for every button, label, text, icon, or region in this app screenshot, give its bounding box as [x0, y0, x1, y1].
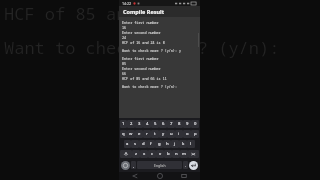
button[interactable]: z — [132, 150, 140, 158]
button[interactable]: o — [183, 130, 191, 138]
staticText: x — [143, 151, 146, 157]
button[interactable]: Shift — [120, 150, 132, 158]
staticText: h — [166, 141, 169, 147]
staticText: HCF of 16 and 24 is 8 — [122, 40, 165, 45]
staticText: 14:22 — [122, 1, 131, 6]
staticText: Enter first number — [122, 20, 159, 25]
staticText: a — [126, 141, 129, 147]
button[interactable]: p — [191, 130, 199, 138]
button[interactable]: q — [120, 130, 127, 138]
staticText: 66 — [122, 71, 127, 76]
button[interactable]: h — [163, 140, 171, 148]
button[interactable]: r — [143, 130, 151, 138]
button[interactable]: v — [156, 150, 164, 158]
staticText: m — [182, 151, 186, 157]
staticText: 4 — [146, 121, 149, 127]
button[interactable]: Emoji — [121, 161, 130, 170]
staticText: t — [154, 131, 156, 137]
button[interactable]: English — [137, 161, 182, 169]
button[interactable]: f — [147, 140, 155, 148]
button[interactable]: 3 — [135, 120, 143, 128]
staticText: HCF of 85 and 66 — [4, 2, 168, 25]
staticText: v — [159, 151, 162, 157]
button[interactable]: d — [139, 140, 147, 148]
staticText: 0 — [194, 121, 197, 127]
button[interactable]: e — [135, 130, 143, 138]
button[interactable]: . — [183, 161, 188, 169]
staticText: y — [162, 131, 165, 137]
staticText: 9 — [186, 121, 189, 127]
staticText: n — [175, 151, 178, 157]
button[interactable]: a — [124, 140, 131, 148]
staticText: i — [178, 131, 180, 137]
staticText: Enter first number — [122, 56, 159, 61]
staticText: k — [182, 141, 185, 147]
staticText: e — [138, 131, 141, 137]
button[interactable]: Back — [127, 172, 143, 180]
staticText: Enter second number — [122, 30, 161, 35]
staticText: 85 — [122, 61, 127, 66]
button[interactable]: 6 — [159, 120, 167, 128]
button[interactable]: 2 — [127, 120, 135, 128]
staticText: 8 — [178, 121, 181, 127]
button[interactable]: s — [131, 140, 139, 148]
staticText: 7 — [170, 121, 173, 127]
staticText: s — [134, 141, 137, 147]
button[interactable]: 7 — [167, 120, 175, 128]
staticText: 6 — [162, 121, 165, 127]
staticText: 2 — [130, 121, 133, 127]
button[interactable]: l — [187, 140, 195, 148]
staticText: l — [190, 141, 192, 147]
button[interactable]: 4 — [143, 120, 151, 128]
button[interactable]: m — [180, 150, 188, 158]
button[interactable]: g — [155, 140, 163, 148]
button[interactable]: j — [171, 140, 179, 148]
staticText: q — [122, 131, 125, 137]
button[interactable]: Recents — [176, 172, 192, 180]
staticText: w — [129, 131, 133, 137]
staticText: f — [150, 141, 152, 147]
button[interactable]: 1 — [120, 120, 127, 128]
button[interactable]: k — [179, 140, 187, 148]
button[interactable]: y — [159, 130, 167, 138]
staticText: b — [167, 151, 170, 157]
button[interactable]: t — [151, 130, 159, 138]
staticText: 24 — [122, 35, 127, 40]
button[interactable]: u — [167, 130, 175, 138]
button[interactable]: 5 — [151, 120, 159, 128]
staticText: . — [185, 163, 187, 168]
staticText: g — [158, 141, 161, 147]
staticText: d — [142, 141, 145, 147]
button[interactable]: Compile Result — [119, 6, 200, 17]
button[interactable]: w — [127, 130, 135, 138]
button[interactable]: 8 — [175, 120, 183, 128]
staticText: u — [170, 131, 173, 137]
button[interactable]: , — [131, 161, 136, 169]
staticText: p — [194, 131, 197, 137]
staticText: , — [133, 163, 135, 168]
staticText: 3 — [138, 121, 141, 127]
button[interactable]: n — [172, 150, 180, 158]
staticText: r — [146, 131, 148, 137]
staticText: English — [154, 163, 166, 168]
button[interactable]: Home — [152, 172, 168, 180]
staticText: 5 — [154, 121, 157, 127]
button[interactable]: Backspace — [188, 150, 199, 158]
staticText: Want to check more ? (y/n): — [122, 84, 177, 89]
staticText: c — [151, 151, 154, 157]
staticText: HCF of 85 and 66 is 11 — [122, 76, 167, 81]
staticText: Enter second number — [122, 66, 161, 71]
staticText: o — [186, 131, 189, 137]
staticText: Want to check more ? (y/n): y — [122, 48, 181, 53]
button[interactable]: x — [140, 150, 148, 158]
staticText: j — [174, 141, 176, 147]
staticText: 16 — [122, 25, 127, 30]
button[interactable]: b — [164, 150, 172, 158]
staticText: Compile Result — [123, 8, 165, 15]
button[interactable]: Enter — [189, 161, 198, 170]
button[interactable]: 0 — [191, 120, 199, 128]
button[interactable]: c — [148, 150, 156, 158]
staticText: Want to check more ? (y/n): — [4, 36, 280, 59]
button[interactable]: i — [175, 130, 183, 138]
button[interactable]: 9 — [183, 120, 191, 128]
